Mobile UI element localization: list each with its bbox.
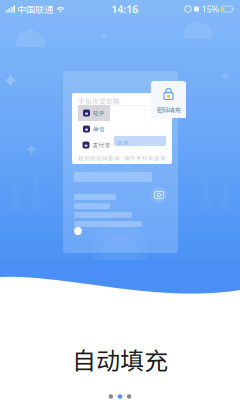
staticText: 海外手机号登录 xyxy=(124,154,166,162)
staticText: 15% xyxy=(201,3,219,15)
staticText: 自动填充 xyxy=(72,342,168,376)
staticText: 密码填充 xyxy=(156,105,180,114)
staticText: 登录 xyxy=(117,138,129,147)
staticText: 中国联通 xyxy=(17,2,53,16)
staticText: 14:16 xyxy=(111,2,138,16)
staticText: 手机号或邮箱 xyxy=(78,96,120,106)
staticText: 短信验证码登录 xyxy=(78,154,120,162)
staticText: 知乎 xyxy=(93,109,105,117)
staticText: 支付宝 xyxy=(92,141,110,149)
staticText: 微信 xyxy=(93,125,105,133)
